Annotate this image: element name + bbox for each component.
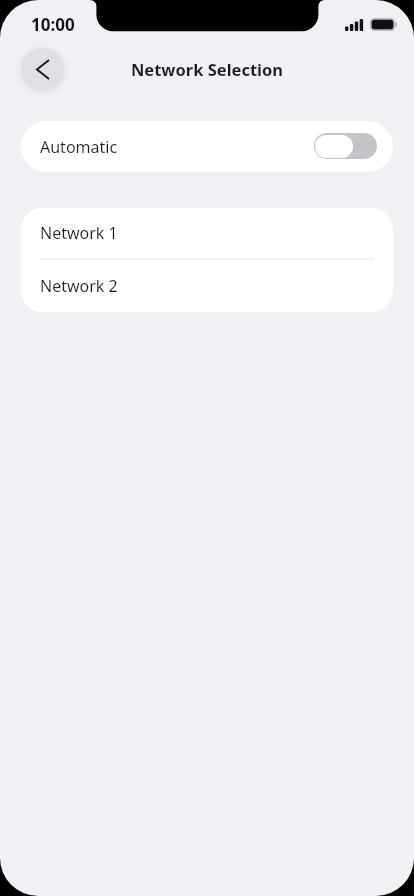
button[interactable]: Back — [21, 48, 64, 91]
staticText: 10:00 — [31, 13, 75, 36]
staticText: Automatic — [40, 136, 118, 158]
button[interactable]: Network 2 — [21, 260, 393, 312]
staticText: Network 2 — [40, 275, 118, 297]
button[interactable]: Automatic network selection toggle — [314, 133, 377, 159]
button[interactable]: Automatic — [21, 121, 393, 172]
button[interactable]: Network 1 — [21, 208, 393, 258]
staticText: Network 1 — [40, 222, 118, 244]
staticText: Network Selection — [0, 58, 414, 80]
